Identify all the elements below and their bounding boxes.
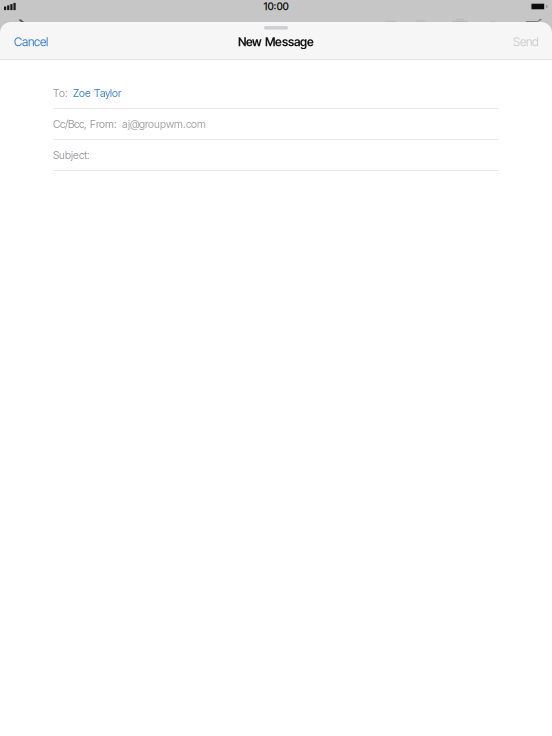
- staticText: To:: [53, 87, 68, 99]
- button[interactable]: Subject:: [0, 140, 552, 171]
- staticText: Zoe Taylor: [73, 87, 121, 99]
- button[interactable]: To:: [0, 78, 552, 109]
- staticText: aj@groupwm.com: [122, 118, 206, 130]
- button[interactable]: Send: [501, 30, 552, 54]
- staticText: 10:00: [263, 0, 288, 13]
- staticText: Cancel: [14, 35, 48, 49]
- staticText: Send: [513, 35, 539, 49]
- button[interactable]: Cc/Bcc, From:: [0, 109, 552, 140]
- staticText: Cc/Bcc, From:: [53, 118, 117, 130]
- staticText: New Message: [238, 35, 314, 49]
- staticText: Subject:: [53, 149, 90, 161]
- button[interactable]: Cancel: [0, 30, 60, 54]
